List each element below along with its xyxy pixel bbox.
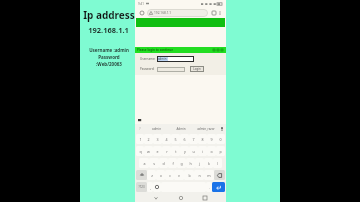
staticText: Ip address — [83, 8, 135, 22]
button[interactable]: Shift — [136, 170, 147, 180]
staticText: Please login to continue — [137, 48, 173, 52]
button[interactable]: r — [162, 146, 171, 156]
button[interactable]: Enter — [212, 182, 225, 192]
staticText: k — [208, 161, 210, 166]
button[interactable]: Window control — [216, 48, 220, 52]
staticText: Admin — [176, 127, 186, 131]
staticText: 1 — [139, 137, 142, 142]
button[interactable]: Backspace — [214, 170, 225, 180]
button[interactable]: Admin — [168, 124, 193, 133]
staticText: h — [189, 161, 192, 166]
button[interactable]: Emoji — [153, 182, 161, 192]
button[interactable]: x — [156, 170, 165, 180]
button[interactable]: o — [207, 146, 216, 156]
button[interactable]: 1 — [136, 134, 144, 144]
button[interactable]: h — [186, 158, 195, 168]
staticText: 5 — [174, 137, 177, 142]
button[interactable]: admin — [144, 124, 168, 133]
button[interactable]: Recent apps — [201, 194, 209, 202]
button[interactable]: 192.168.1.1 — [147, 9, 208, 17]
button[interactable]: 8 — [198, 134, 207, 144]
staticText: z — [151, 173, 153, 178]
staticText: 4 — [165, 137, 168, 142]
button[interactable]: 2 — [144, 134, 153, 144]
button[interactable] — [157, 67, 185, 72]
staticText: 2 — [147, 137, 150, 142]
staticText: y — [184, 149, 186, 154]
button[interactable]: b — [184, 170, 194, 180]
button[interactable]: y — [180, 146, 189, 156]
staticText: :Web/20063 — [96, 61, 122, 67]
staticText: . — [209, 185, 210, 190]
button[interactable]: 5 — [171, 134, 180, 144]
button[interactable]: 3 — [153, 134, 162, 144]
button[interactable]: Tabs — [210, 9, 217, 16]
staticText: 9:41 — [138, 2, 144, 6]
staticText: Username :admin — [89, 47, 129, 53]
button[interactable]: 9 — [207, 134, 216, 144]
staticText: admin — [158, 57, 167, 61]
staticText: ? — [139, 127, 141, 131]
button[interactable]: . — [206, 182, 212, 192]
button[interactable]: admin_razor — [193, 124, 218, 133]
staticText: w — [147, 149, 150, 154]
staticText: Password — [98, 54, 120, 60]
button[interactable]: j — [195, 158, 204, 168]
button[interactable]: g — [177, 158, 186, 168]
button[interactable]: u — [189, 146, 198, 156]
staticText: p — [219, 149, 222, 154]
staticText: l — [217, 161, 218, 166]
staticText: b — [188, 173, 191, 178]
button[interactable]: Back — [152, 194, 160, 202]
button[interactable]: q — [136, 146, 144, 156]
button[interactable]: 0 — [216, 134, 225, 144]
staticText: e — [156, 149, 159, 154]
staticText: admin — [152, 127, 161, 131]
button[interactable]: 7 — [189, 134, 198, 144]
button[interactable]: admin — [157, 56, 194, 62]
button[interactable]: z — [147, 170, 156, 180]
staticText: o — [210, 149, 213, 154]
button[interactable]: n — [194, 170, 204, 180]
staticText: 6 — [183, 137, 186, 142]
button[interactable]: t — [171, 146, 180, 156]
button[interactable]: 4 — [162, 134, 171, 144]
staticText: 192.168.1.1 — [154, 11, 172, 15]
staticText: , — [150, 185, 151, 190]
button[interactable]: Window control — [212, 48, 216, 52]
staticText: n — [198, 173, 201, 178]
button[interactable]: l — [213, 158, 222, 168]
button[interactable]: Home — [177, 194, 185, 202]
button[interactable]: f — [168, 158, 177, 168]
staticText: admin_razor — [197, 127, 215, 131]
staticText: g — [180, 161, 183, 166]
button[interactable]: c — [165, 170, 174, 180]
staticText: d — [162, 161, 165, 166]
button[interactable]: m — [204, 170, 214, 180]
button[interactable]: Voice input — [218, 124, 226, 133]
button[interactable]: , — [147, 182, 153, 192]
button[interactable]: Login — [190, 66, 204, 72]
button[interactable]: p — [216, 146, 225, 156]
staticText: u — [192, 149, 195, 154]
button[interactable]: s — [149, 158, 159, 168]
button[interactable]: Window control — [220, 48, 224, 52]
staticText: 192.168.1.1 — [88, 25, 129, 35]
button[interactable]: 6 — [180, 134, 189, 144]
staticText: 9 — [210, 137, 213, 142]
button[interactable]: w — [144, 146, 153, 156]
button[interactable]: e — [153, 146, 162, 156]
button[interactable]: i — [198, 146, 207, 156]
button[interactable]: a — [139, 158, 149, 168]
button[interactable]: Clipboard — [135, 124, 144, 133]
staticText: i — [202, 149, 203, 154]
staticText: s — [153, 161, 155, 166]
staticText: 0 — [219, 137, 222, 142]
button[interactable]: d — [159, 158, 168, 168]
button[interactable]: Reload — [138, 9, 145, 16]
button[interactable]: v — [174, 170, 184, 180]
button[interactable]: k — [204, 158, 213, 168]
button[interactable]: ?123 — [136, 182, 147, 192]
button[interactable]: More options — [217, 10, 223, 16]
